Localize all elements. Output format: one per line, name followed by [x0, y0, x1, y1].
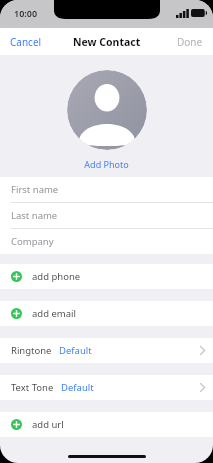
staticText: 10:00	[14, 7, 38, 19]
staticText: Last name	[11, 209, 58, 222]
button[interactable]: Add Photo	[67, 70, 147, 150]
button[interactable]: Done	[167, 30, 213, 54]
button[interactable]: add phone	[0, 264, 213, 289]
button[interactable]: Last name	[0, 203, 213, 229]
staticText: Ringtone	[11, 344, 52, 357]
button[interactable]: First name	[0, 177, 213, 203]
staticText: Default	[61, 381, 94, 394]
staticText: Company	[11, 235, 54, 248]
staticText: add email	[32, 307, 76, 320]
button[interactable]: Cancel	[0, 30, 52, 54]
button[interactable]: Text Tone	[0, 375, 213, 400]
button[interactable]: Ringtone	[0, 338, 213, 363]
staticText: Add Photo	[84, 158, 129, 170]
staticText: add phone	[32, 270, 81, 283]
button[interactable]: Add Photo	[76, 156, 137, 172]
button[interactable]: add url	[0, 412, 213, 437]
staticText: Done	[177, 35, 203, 49]
staticText: add url	[32, 418, 64, 431]
staticText: New Contact	[73, 35, 141, 49]
staticText: Default	[59, 344, 92, 357]
staticText: Text Tone	[11, 381, 54, 394]
button[interactable]: add email	[0, 301, 213, 326]
staticText: Cancel	[10, 35, 42, 49]
staticText: First name	[11, 183, 59, 196]
button[interactable]: Company	[0, 229, 213, 254]
